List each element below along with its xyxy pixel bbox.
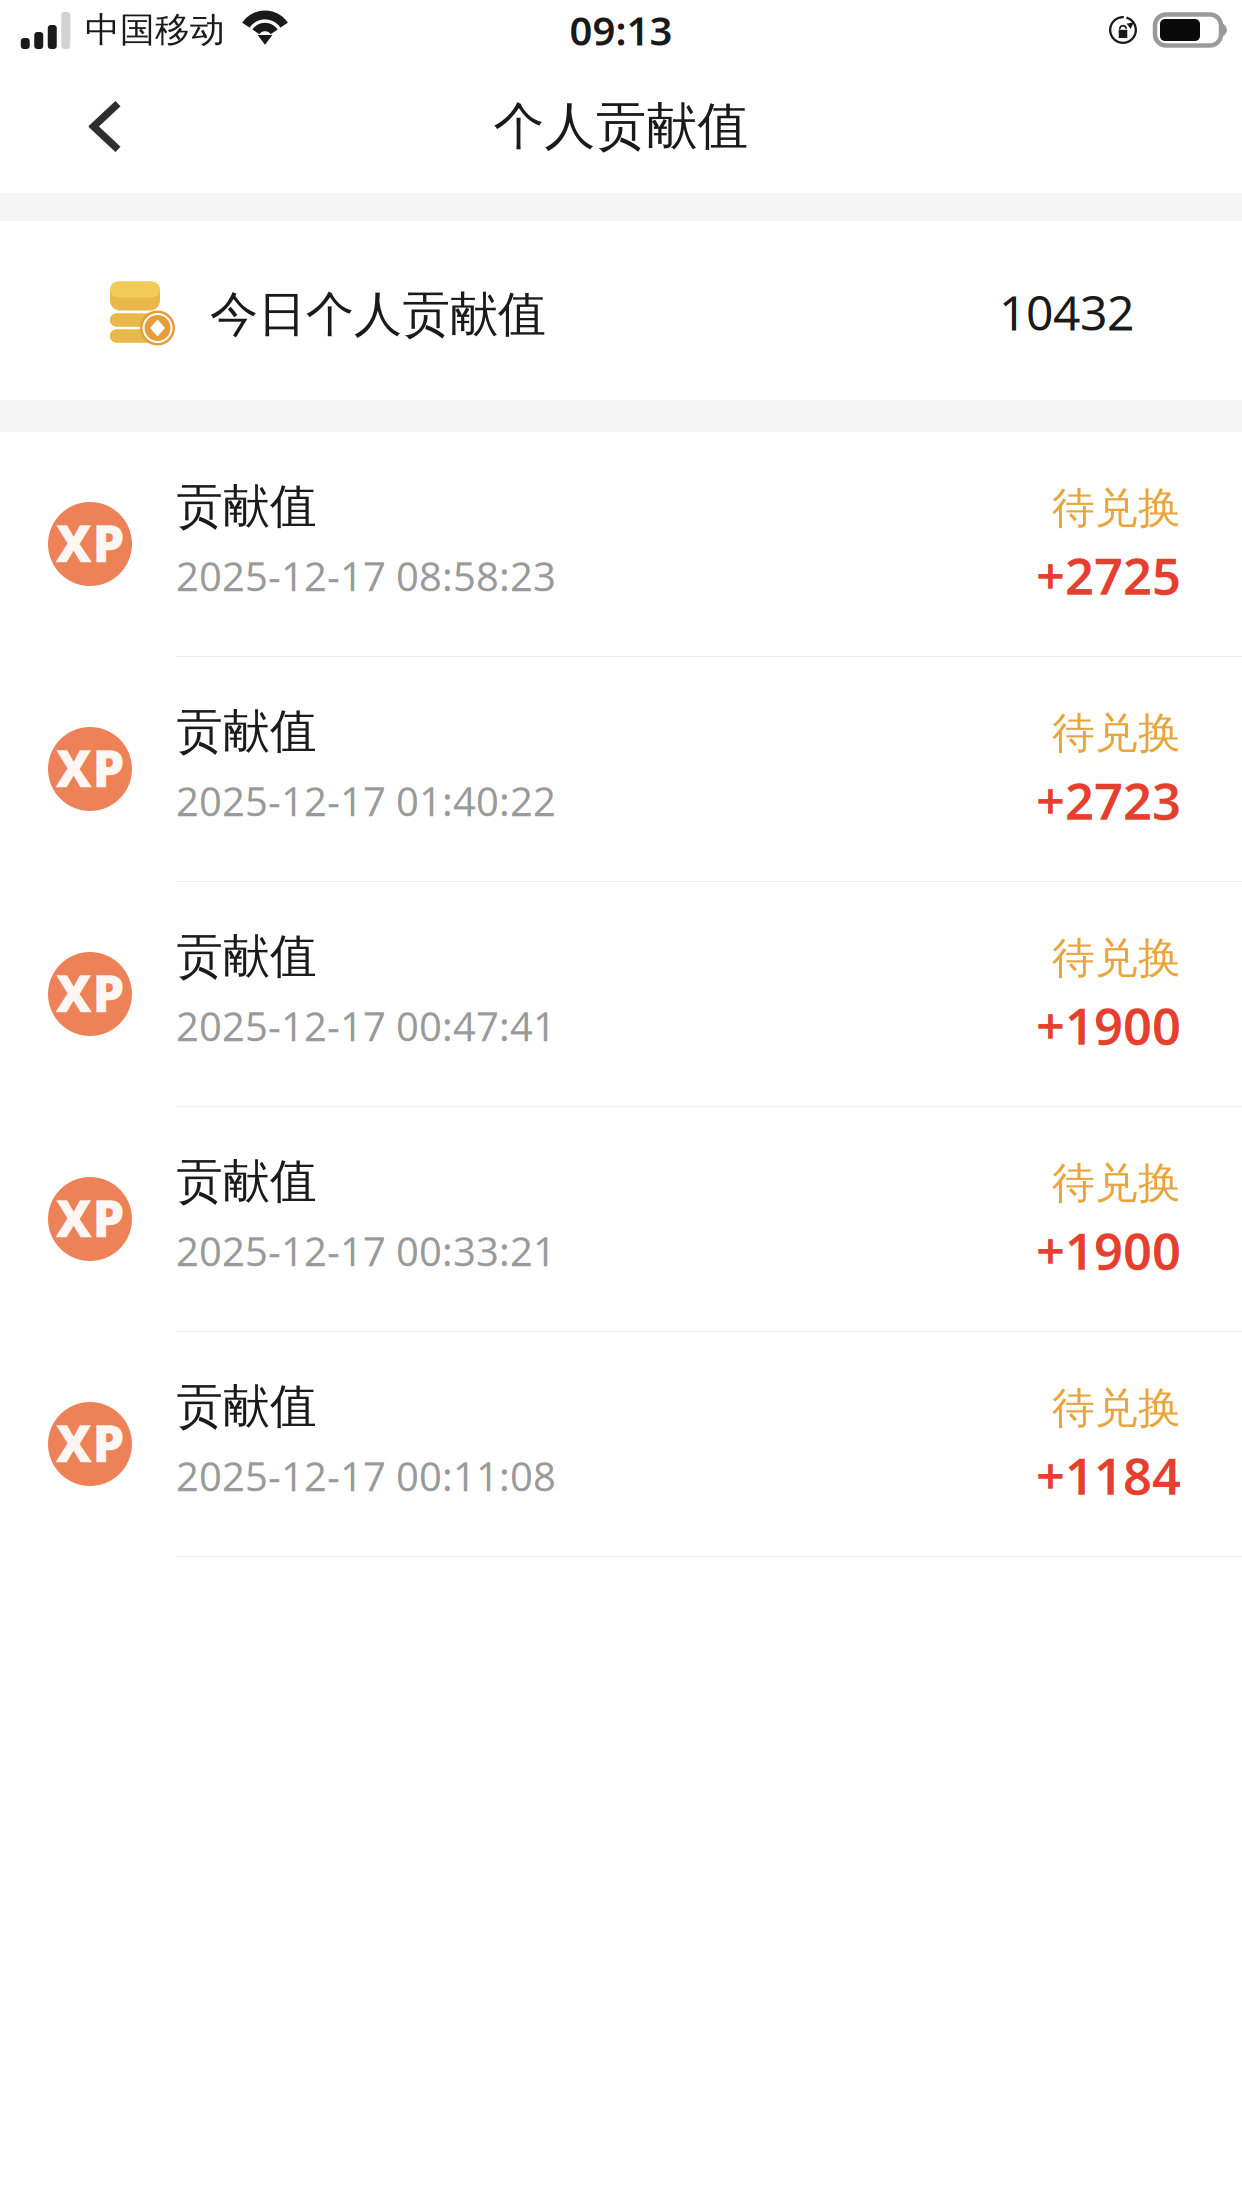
staticText: 待兑换 — [1052, 482, 1181, 535]
staticText: 待兑换 — [1052, 932, 1181, 985]
staticText: 贡献值 — [176, 928, 317, 985]
staticText: +1900 — [1036, 992, 1181, 1059]
button[interactable]: 返回 — [0, 76, 152, 176]
staticText: 贡献值 — [176, 1378, 317, 1435]
staticText: 今日个人贡献值 — [210, 285, 546, 344]
staticText: +1184 — [1036, 1442, 1181, 1509]
staticText: 2025-12-17 01:40:22 — [176, 774, 556, 827]
staticText: XP — [55, 959, 124, 1026]
button[interactable]: XP — [0, 432, 1242, 657]
staticText: XP — [55, 734, 124, 801]
staticText: 2025-12-17 08:58:23 — [176, 549, 556, 602]
staticText: 贡献值 — [176, 478, 317, 535]
staticText: 2025-12-17 00:47:41 — [176, 999, 556, 1052]
staticText: 贡献值 — [176, 703, 317, 760]
staticText: +2725 — [1036, 542, 1181, 609]
staticText: XP — [55, 1184, 124, 1251]
button[interactable]: XP — [0, 882, 1242, 1107]
staticText: 贡献值 — [176, 1153, 317, 1210]
staticText: +1900 — [1036, 1217, 1181, 1284]
staticText: 中国移动 — [85, 9, 225, 51]
staticText: 2025-12-17 00:11:08 — [176, 1449, 556, 1502]
button[interactable]: XP — [0, 1107, 1242, 1332]
staticText: 2025-12-17 00:33:21 — [176, 1224, 556, 1277]
staticText: 待兑换 — [1052, 1157, 1181, 1210]
button[interactable]: XP — [0, 657, 1242, 882]
button[interactable]: XP — [0, 1332, 1242, 1557]
staticText: 待兑换 — [1052, 707, 1181, 760]
staticText: 10432 — [999, 280, 1134, 344]
staticText: 个人贡献值 — [493, 95, 748, 158]
staticText: +2723 — [1036, 767, 1181, 834]
staticText: XP — [55, 1409, 124, 1476]
staticText: XP — [55, 509, 124, 576]
staticText: 09:13 — [569, 3, 672, 56]
staticText: 待兑换 — [1052, 1382, 1181, 1435]
button[interactable]: 今日个人贡献值 — [0, 221, 1242, 400]
